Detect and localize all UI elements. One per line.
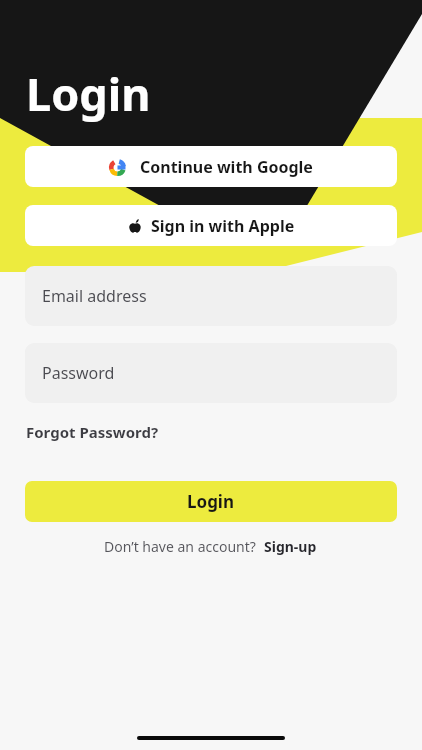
- button[interactable]: Login: [25, 481, 397, 522]
- button[interactable]: Sign-up: [262, 535, 319, 558]
- staticText: Login: [187, 490, 235, 513]
- button[interactable]: Continue with Google: [25, 146, 397, 187]
- staticText: Don’t have an account?: [104, 537, 256, 556]
- staticText: Sign in with Apple: [151, 215, 295, 237]
- staticText: Continue with Google: [140, 156, 313, 178]
- staticText: Login: [26, 63, 151, 124]
- staticText: Email address: [42, 285, 147, 307]
- staticText: Forgot Password?: [26, 422, 159, 442]
- button[interactable]: Forgot Password?: [22, 419, 163, 445]
- staticText: Sign-up: [264, 537, 317, 556]
- staticText: Password: [42, 362, 115, 384]
- button[interactable]: Email address: [25, 266, 397, 326]
- button[interactable]: Sign in with Apple: [25, 205, 397, 246]
- button[interactable]: Password: [25, 343, 397, 403]
